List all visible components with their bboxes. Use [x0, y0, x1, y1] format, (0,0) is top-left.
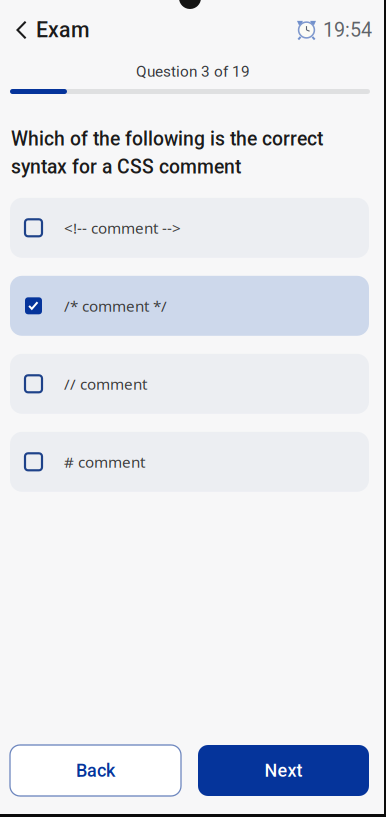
staticText: # comment: [64, 451, 145, 472]
staticText: <!-- comment -->: [64, 217, 181, 238]
staticText: // comment: [64, 373, 147, 394]
button[interactable]: # comment: [10, 432, 369, 492]
staticText: Back: [76, 760, 115, 781]
button[interactable]: Exam: [0, 5, 100, 55]
button[interactable]: <!-- comment -->: [10, 198, 369, 258]
staticText: Next: [264, 760, 302, 781]
button[interactable]: // comment: [10, 354, 369, 414]
button[interactable]: /* comment */: [10, 276, 369, 336]
staticText: Question 3 of 19: [136, 62, 250, 80]
staticText: Which of the following is the correct sy…: [11, 127, 323, 178]
staticText: 19:54: [323, 18, 372, 41]
button[interactable]: Next: [198, 745, 369, 796]
staticText: Exam: [36, 17, 90, 42]
staticText: /* comment */: [64, 295, 167, 316]
button[interactable]: Back: [10, 745, 181, 796]
